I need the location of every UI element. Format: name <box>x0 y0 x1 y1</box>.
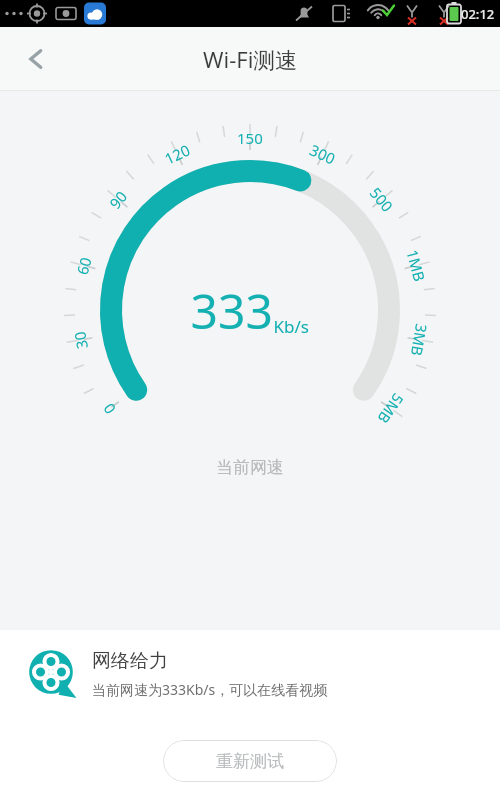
button[interactable]: Back <box>8 31 64 87</box>
staticText: 重新测试 <box>216 751 284 772</box>
staticText: 02:12 <box>461 5 495 23</box>
button[interactable]: 重新测试 <box>163 740 337 782</box>
staticText: 网络给力 <box>92 649 168 673</box>
staticText: Wi-Fi测速 <box>203 44 298 74</box>
staticText: 当前网速为333Kb/s，可以在线看视频 <box>92 680 328 699</box>
